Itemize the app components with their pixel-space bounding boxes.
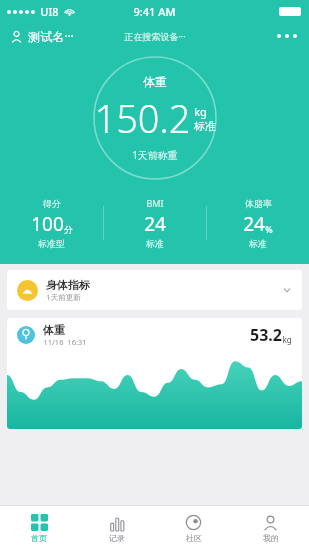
button[interactable]: 我的 — [232, 506, 309, 550]
staticText: 正在搜索设备··· — [124, 30, 186, 42]
staticText: 24 — [243, 211, 265, 237]
staticText: 分 — [64, 224, 73, 235]
button[interactable]: 体重 — [7, 318, 302, 429]
button[interactable]: 身体指标 — [7, 270, 302, 310]
staticText: 得分 — [43, 198, 61, 209]
staticText: 标准型 — [38, 238, 65, 249]
button[interactable]: 得分 — [0, 198, 103, 249]
button[interactable]: 社区 — [155, 506, 232, 550]
staticText: % — [265, 223, 273, 235]
staticText: 体重 — [43, 323, 65, 337]
staticText: 150.2 — [94, 92, 191, 144]
staticText: 体重 — [143, 74, 167, 89]
button[interactable]: 测试名··· — [10, 28, 74, 44]
staticText: BMI — [146, 197, 164, 209]
staticText: 标准 — [194, 119, 216, 133]
staticText: 测试名··· — [28, 28, 74, 44]
staticText: 9:41 AM — [133, 4, 176, 19]
staticText: 53.2 — [250, 324, 282, 346]
staticText: 社区 — [186, 533, 202, 543]
staticText: 体脂率 — [245, 198, 272, 209]
staticText: UI8 — [40, 4, 59, 19]
staticText: kg — [194, 104, 207, 119]
staticText: kg — [282, 334, 292, 345]
staticText: 标准 — [146, 238, 164, 249]
button[interactable]: 体脂率 — [207, 198, 309, 249]
staticText: 记录 — [109, 533, 125, 543]
button[interactable]: More options — [275, 34, 299, 38]
button[interactable]: 记录 — [78, 506, 155, 550]
staticText: 标准 — [249, 238, 267, 249]
staticText: 24 — [144, 211, 166, 237]
staticText: 身体指标 — [46, 278, 90, 292]
staticText: 首页 — [31, 533, 47, 543]
staticText: 我的 — [263, 533, 279, 543]
staticText: 100 — [31, 211, 64, 237]
staticText: 1天前称重 — [132, 148, 178, 162]
button[interactable]: 首页 — [0, 506, 78, 550]
staticText: 11/16 16:31 — [43, 337, 87, 347]
staticText: 1天前更新 — [46, 292, 81, 302]
button[interactable]: BMI — [104, 197, 206, 249]
